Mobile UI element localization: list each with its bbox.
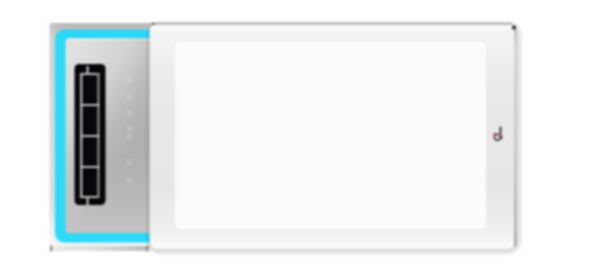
other: Monitor and tablet product photo [0, 0, 600, 261]
